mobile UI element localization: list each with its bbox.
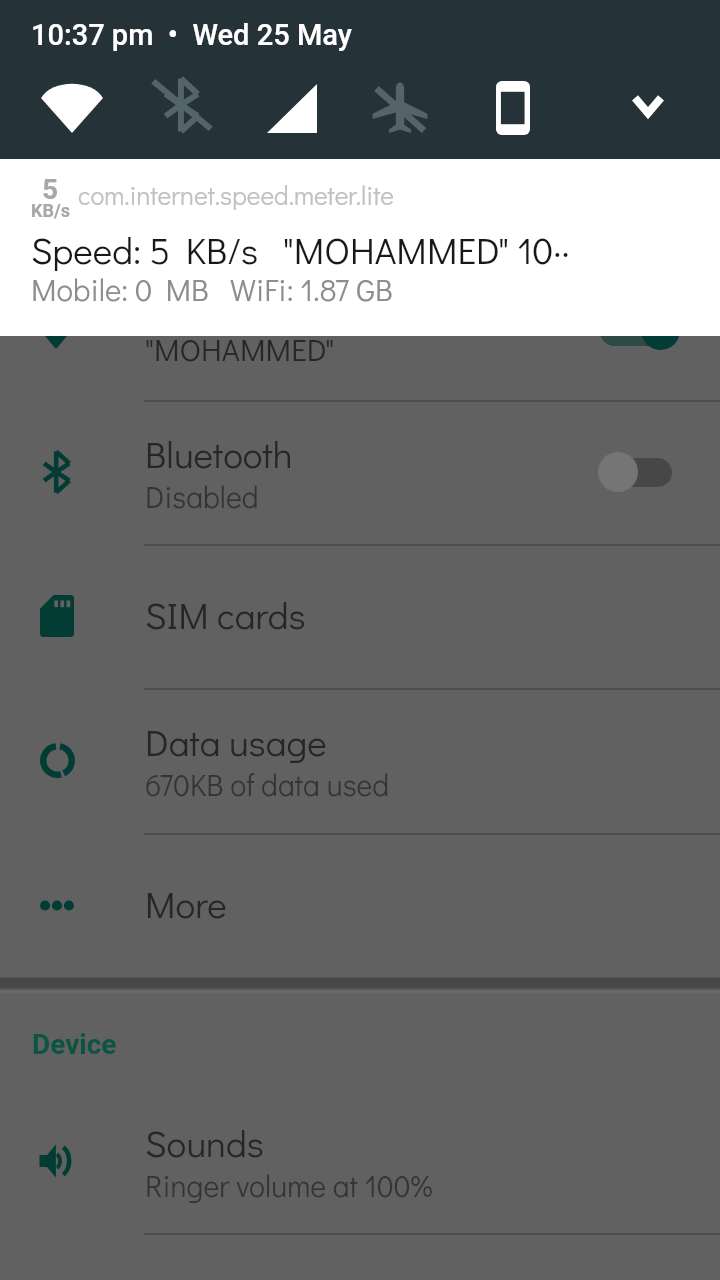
staticText: com.internet.speed.meter.lite xyxy=(78,178,394,212)
staticText: Ringer volume at 100% xyxy=(145,1166,433,1205)
staticText: Mobile: 0 MB WiFi: 1.87 GB xyxy=(31,269,393,310)
button[interactable]: Mobile signal xyxy=(267,84,317,133)
button[interactable]: 5 xyxy=(0,159,720,336)
staticText: Data usage xyxy=(145,717,327,766)
button[interactable]: SIM cards xyxy=(0,544,720,688)
button[interactable]: Wi-Fi xyxy=(41,83,103,133)
staticText: Bluetooth xyxy=(145,429,293,478)
staticText: "MOHAMMED" xyxy=(145,329,335,370)
staticText: 10:37 pm • Wed 25 May xyxy=(31,18,352,52)
staticText: Sounds xyxy=(145,1118,264,1167)
staticText: 670KB of data used xyxy=(145,765,390,804)
button[interactable]: Bluetooth off xyxy=(164,78,200,132)
button[interactable]: Data usage xyxy=(0,688,720,832)
staticText: KB/s xyxy=(31,200,70,221)
staticText: More xyxy=(145,879,227,928)
staticText: SIM cards xyxy=(145,590,306,639)
staticText: Speed: 5 KB/s "MOHAMMED" 10·· xyxy=(31,225,570,274)
staticText: 5 xyxy=(42,173,59,206)
staticText: Disabled xyxy=(145,477,259,516)
button[interactable]: Device xyxy=(496,81,530,135)
button[interactable]: Bluetooth xyxy=(0,400,720,544)
button[interactable]: Airplane mode off xyxy=(372,79,428,135)
button[interactable]: Display & light xyxy=(0,1233,720,1280)
staticText: Device xyxy=(32,1028,117,1061)
button[interactable]: Toggle Bluetooth xyxy=(598,452,672,494)
button[interactable]: More xyxy=(0,833,720,977)
button[interactable]: Expand quick settings xyxy=(635,97,661,114)
button[interactable]: Sounds xyxy=(0,1089,720,1233)
